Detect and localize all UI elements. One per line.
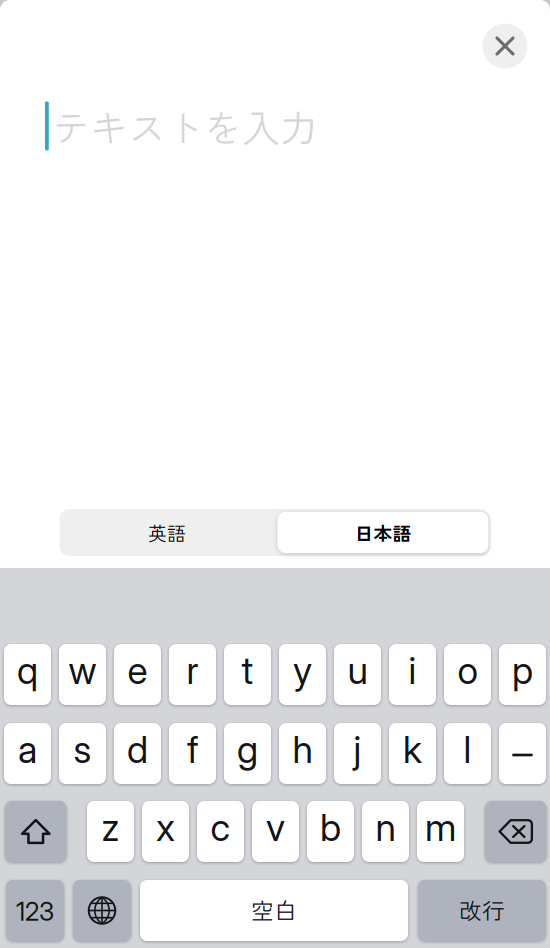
staticText: g [237,727,258,772]
staticText: 英語 [148,519,186,546]
button[interactable]: c [197,801,244,862]
button[interactable]: y [279,644,326,705]
staticText: l [463,727,471,772]
button[interactable]: m [417,801,464,862]
staticText: j [353,727,361,772]
staticText: q [17,648,38,693]
button[interactable]: r [169,644,216,705]
button[interactable]: 英語 [59,509,274,556]
staticText: v [266,805,285,850]
button[interactable]: a [4,723,51,784]
staticText: 日本語 [354,519,411,546]
button[interactable]: 123 [6,880,64,941]
staticText: a [18,727,37,772]
staticText: p [512,648,533,693]
button[interactable]: Shift [5,801,66,862]
staticText: 123 [16,896,54,927]
button[interactable]: t [224,644,271,705]
button[interactable]: v [252,801,299,862]
button[interactable]: Delete [485,801,546,862]
button[interactable]: p [499,644,546,705]
staticText: k [403,727,422,772]
staticText: 改行 [459,893,505,926]
button[interactable]: Minus [499,723,546,784]
button[interactable]: d [114,723,161,784]
button[interactable]: 日本語 [275,509,491,556]
staticText: 空白 [251,893,297,926]
staticText: テキストを入力 [52,98,318,153]
staticText: i [408,648,416,693]
button[interactable]: w [59,644,106,705]
button[interactable]: f [169,723,216,784]
staticText: t [241,648,253,693]
staticText: e [127,648,147,693]
button[interactable]: l [444,723,491,784]
button[interactable]: z [87,801,134,862]
staticText: z [101,805,119,850]
button[interactable]: 空白 [140,880,408,941]
staticText: d [127,727,148,772]
button[interactable]: u [334,644,381,705]
staticText: s [73,727,91,772]
staticText: h [292,727,312,772]
button[interactable]: h [279,723,326,784]
staticText: c [210,805,230,850]
button[interactable]: Close [482,23,527,68]
button[interactable]: x [142,801,189,862]
staticText: x [156,805,175,850]
staticText: r [186,648,198,693]
button[interactable]: n [362,801,409,862]
button[interactable]: s [59,723,106,784]
staticText: n [375,805,395,850]
button[interactable]: o [444,644,491,705]
button[interactable]: j [334,723,381,784]
button[interactable]: g [224,723,271,784]
button[interactable]: q [4,644,51,705]
staticText: o [457,648,477,693]
button[interactable]: Next keyboard [73,880,131,941]
button[interactable]: 改行 [418,880,546,941]
staticText: b [320,805,341,850]
staticText: y [293,648,312,693]
staticText: f [187,727,198,772]
button[interactable]: e [114,644,161,705]
button[interactable]: k [389,723,436,784]
button[interactable]: i [389,644,436,705]
staticText: m [425,805,456,850]
staticText: u [347,648,367,693]
button[interactable]: b [307,801,354,862]
staticText: w [68,648,96,693]
